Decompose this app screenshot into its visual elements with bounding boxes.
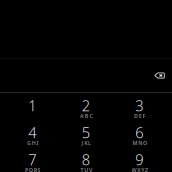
button[interactable]: 7: [5, 147, 59, 172]
button[interactable]: 3: [112, 93, 166, 120]
staticText: JKL: [81, 139, 91, 147]
staticText: GHI: [27, 139, 39, 147]
staticText: 9: [135, 150, 143, 169]
staticText: 7: [28, 150, 36, 169]
button[interactable]: 4: [5, 120, 59, 147]
staticText: TUV: [80, 166, 92, 172]
staticText: PQRS: [25, 166, 40, 172]
staticText: DEF: [134, 112, 146, 120]
button[interactable]: 1: [5, 93, 59, 120]
staticText: 2: [82, 96, 90, 115]
button[interactable]: 9: [112, 147, 166, 172]
staticText: 8: [82, 150, 90, 169]
button[interactable]: 5: [59, 120, 112, 147]
button[interactable]: 2: [59, 93, 112, 120]
staticText: WXYZ: [132, 166, 148, 172]
staticText: 5: [82, 123, 90, 142]
staticText: 3: [135, 96, 143, 115]
button[interactable]: 8: [59, 147, 112, 172]
staticText: 4: [28, 123, 36, 142]
staticText: ABC: [80, 112, 93, 120]
button[interactable]: 6: [112, 120, 166, 147]
staticText: 1: [28, 96, 36, 115]
staticText: 6: [135, 123, 143, 142]
button[interactable]: Delete: [147, 64, 172, 86]
staticText: MNO: [132, 139, 147, 147]
